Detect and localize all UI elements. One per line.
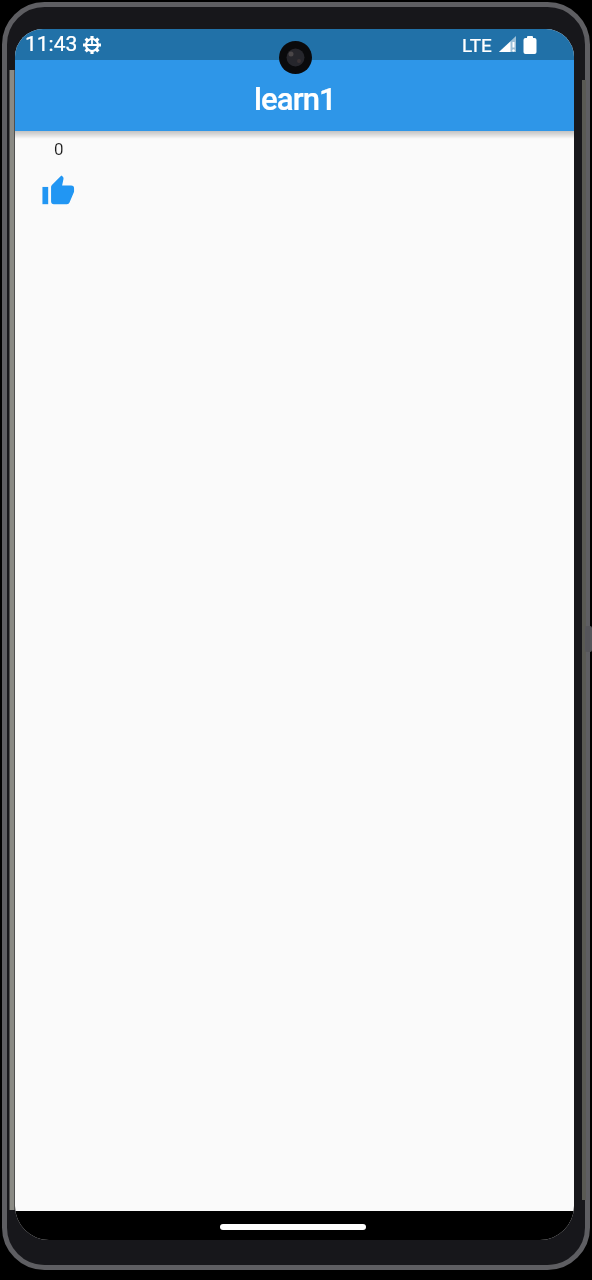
staticText: LTE xyxy=(462,34,492,56)
staticText: 11:43 xyxy=(25,32,78,57)
staticText: learn1 xyxy=(254,81,336,117)
button[interactable] xyxy=(41,174,76,209)
staticText: 0 xyxy=(54,139,64,159)
